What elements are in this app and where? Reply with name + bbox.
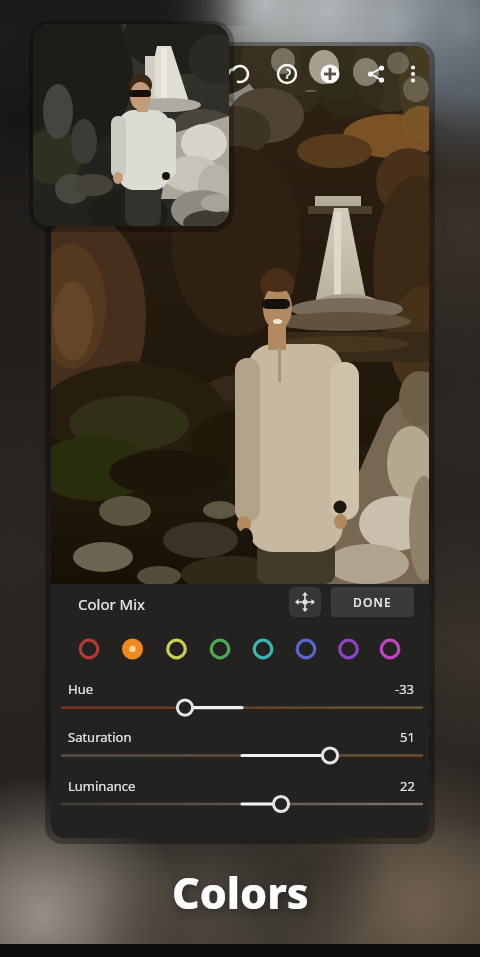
- staticText: Hue: [68, 680, 93, 698]
- button[interactable]: [249, 635, 277, 663]
- staticText: 22: [400, 777, 415, 795]
- staticText: Saturation: [68, 728, 132, 746]
- button[interactable]: [292, 635, 320, 663]
- button[interactable]: [376, 635, 404, 663]
- button[interactable]: [62, 771, 422, 817]
- button[interactable]: [271, 58, 303, 90]
- button[interactable]: [289, 587, 321, 617]
- button[interactable]: [224, 58, 256, 90]
- button[interactable]: [314, 58, 346, 90]
- button[interactable]: [334, 635, 362, 663]
- button[interactable]: [162, 635, 190, 663]
- button[interactable]: [397, 58, 429, 90]
- button[interactable]: [33, 24, 229, 226]
- button[interactable]: [62, 722, 422, 768]
- button[interactable]: DONE: [331, 587, 414, 617]
- button[interactable]: [360, 58, 392, 90]
- button[interactable]: [62, 674, 422, 720]
- button[interactable]: [75, 635, 103, 663]
- staticText: Colors: [172, 863, 309, 922]
- staticText: Color Mix: [78, 594, 146, 614]
- staticText: -33: [395, 680, 415, 698]
- button[interactable]: [118, 635, 146, 663]
- button[interactable]: [206, 635, 234, 663]
- staticText: Luminance: [68, 777, 136, 795]
- staticText: 51: [400, 728, 415, 746]
- staticText: DONE: [353, 594, 392, 610]
